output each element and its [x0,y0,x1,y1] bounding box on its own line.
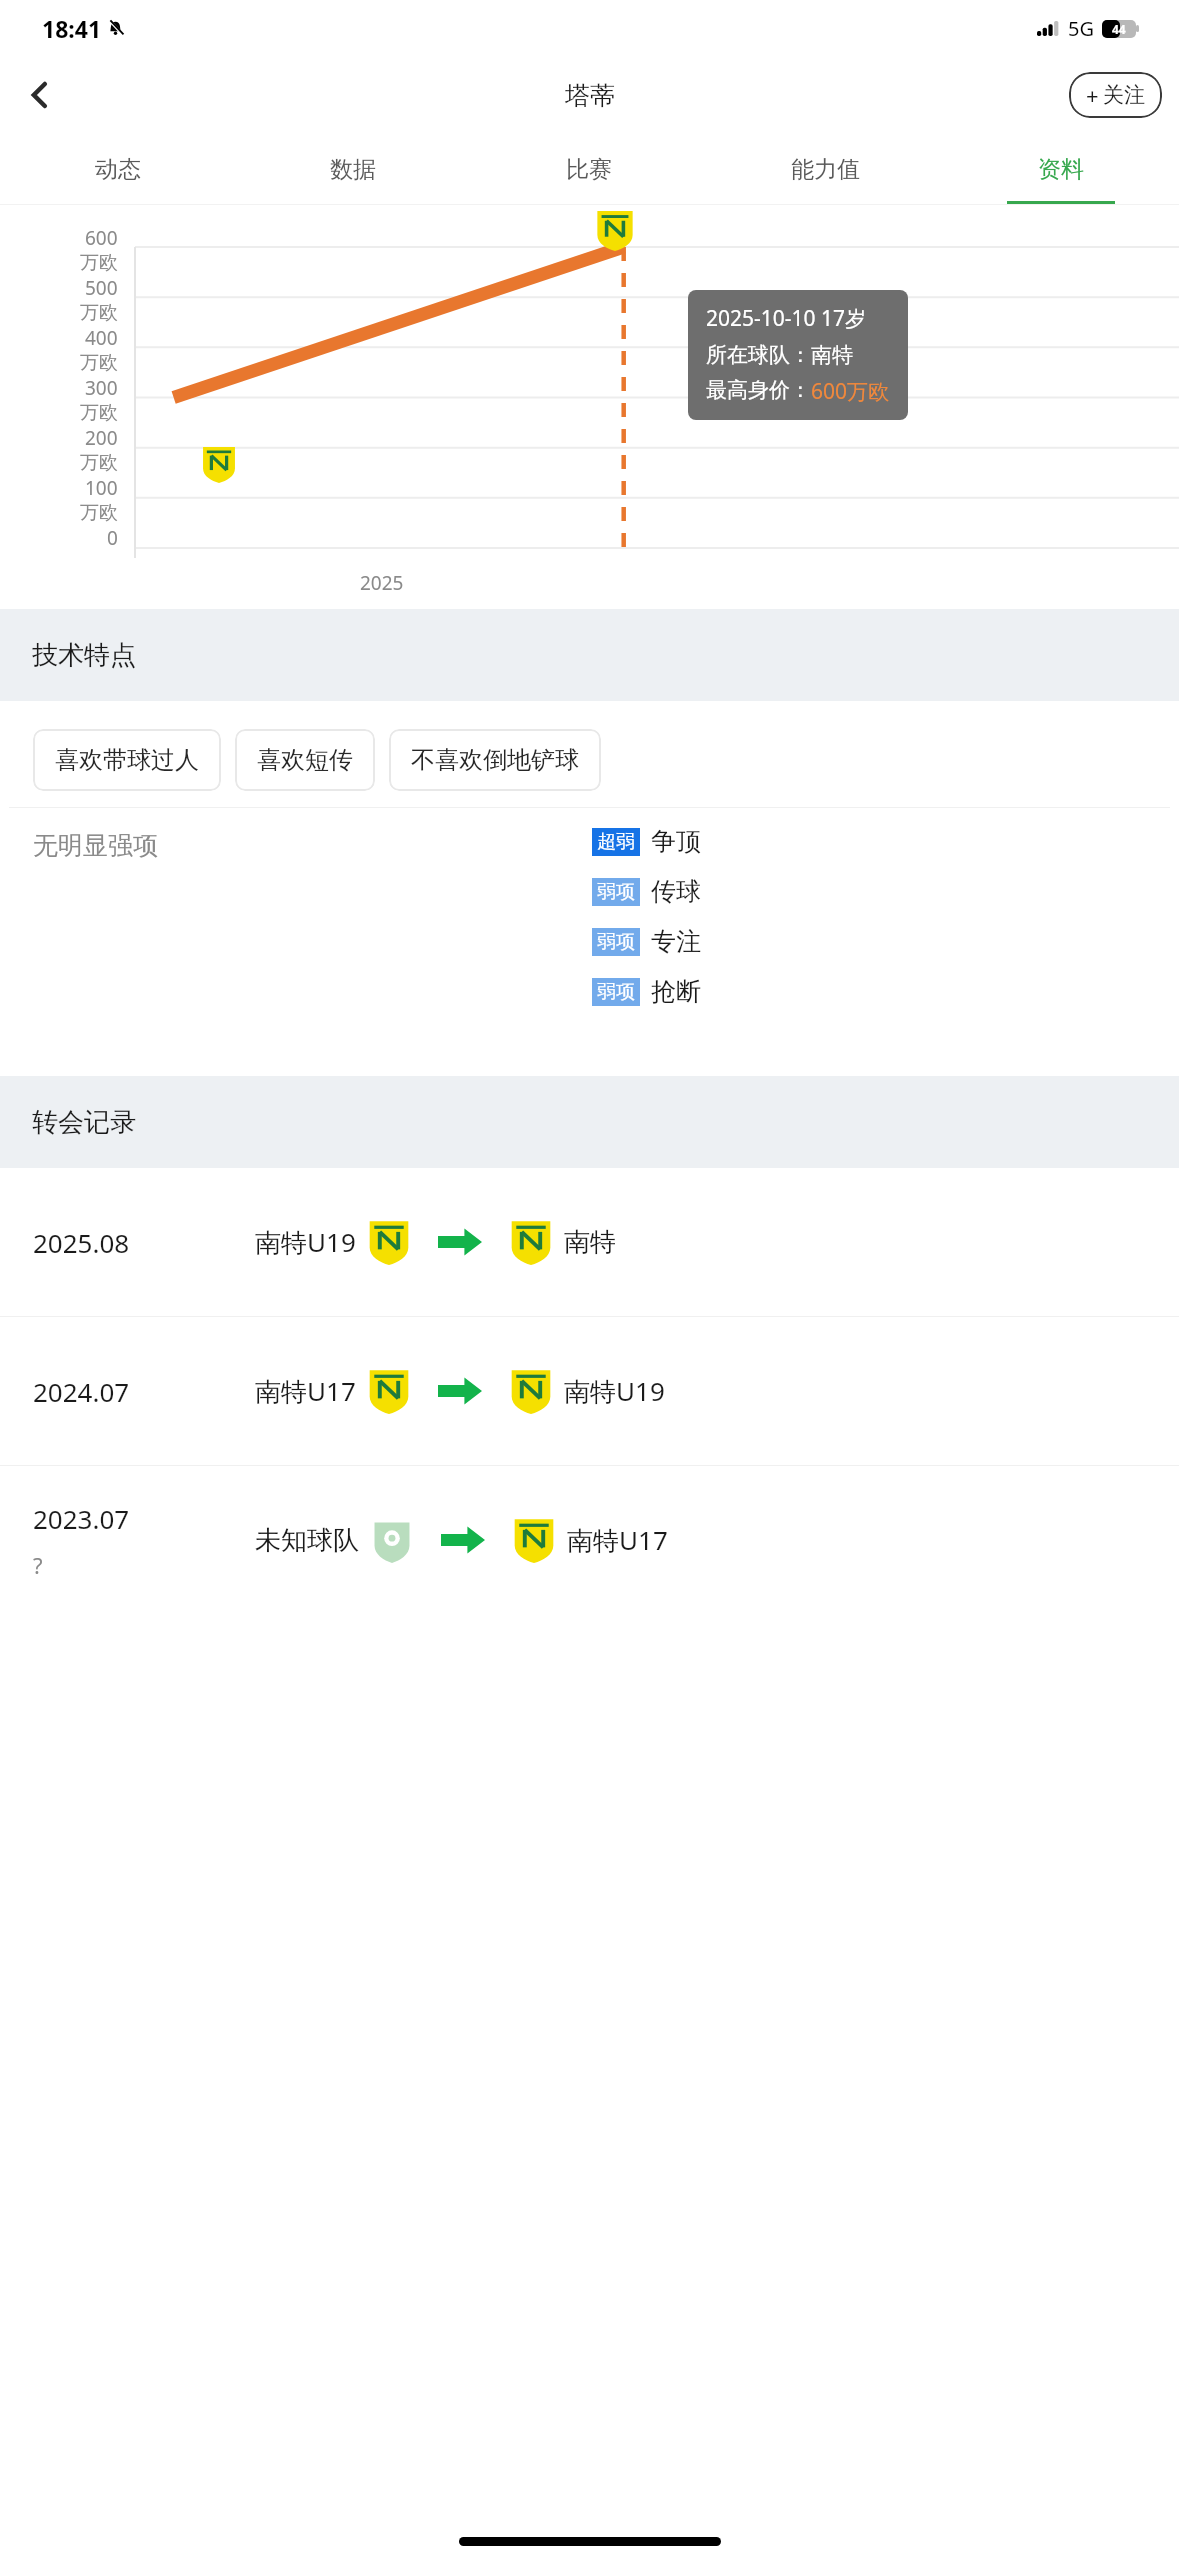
staticText: 100 [85,475,118,501]
staticText: 动态 [95,155,141,184]
staticText: 抢断 [651,976,701,1007]
staticText: 所在球队：南特 [706,342,853,368]
staticText: 喜欢带球过人 [55,745,199,775]
staticText: 5G [1068,15,1094,42]
staticText: 万欧 [80,401,118,425]
staticText: 塔蒂 [565,80,615,111]
staticText: 400 [85,325,118,351]
staticText: 弱项 [597,980,635,1004]
button[interactable]: 2025.08 [0,1168,1179,1316]
staticText: 2025.08 [33,1225,130,1260]
staticText: 比赛 [566,155,612,184]
staticText: 无明显强项 [33,830,158,861]
staticText: 转会记录 [32,1106,136,1139]
staticText: 200 [85,425,118,451]
staticText: 能力值 [791,155,860,184]
button[interactable]: 数据 [235,133,471,205]
staticText: 18:41 [42,13,102,44]
staticText: 2023.07 [33,1501,130,1536]
staticText: 资料 [1038,155,1084,184]
staticText: ? [33,1550,43,1580]
button[interactable]: + [1069,72,1162,118]
staticText: 300 [85,375,118,401]
staticText: 2024.07 [33,1374,130,1409]
button[interactable]: 动态 [0,133,235,205]
staticText: 超弱 [597,830,635,854]
staticText: 喜欢短传 [257,745,353,775]
staticText: 关注 [1103,82,1145,108]
button[interactable]: 2023.07 [0,1466,1179,1614]
button[interactable]: 喜欢短传 [235,729,375,791]
staticText: 南特 [564,1226,616,1259]
staticText: 600 [85,225,118,251]
staticText: 南特U17 [255,1373,356,1409]
staticText: 万欧 [80,451,118,475]
staticText: 传球 [651,876,701,907]
staticText: 南特U19 [255,1224,356,1260]
staticText: 2025 [360,570,404,596]
staticText: 500 [85,275,118,301]
staticText: 万欧 [80,351,118,375]
button[interactable]: 喜欢带球过人 [33,729,221,791]
staticText: 南特U17 [567,1522,668,1558]
staticText: 未知球队 [255,1524,359,1557]
staticText: 最高身价： [706,377,811,403]
button[interactable]: 资料 [943,133,1179,205]
staticText: + [1086,80,1099,110]
staticText: 弱项 [597,930,635,954]
staticText: 专注 [651,926,701,957]
button[interactable]: Back [12,67,68,123]
staticText: 万欧 [80,501,118,525]
staticText: 2025-10-10 17岁 [706,304,867,333]
staticText: 南特U19 [564,1373,665,1409]
staticText: 争顶 [651,826,701,857]
staticText: 万欧 [80,301,118,325]
staticText: 600万欧 [811,377,890,406]
staticText: 不喜欢倒地铲球 [411,745,579,775]
staticText: 弱项 [597,880,635,904]
staticText: 万欧 [80,251,118,275]
staticText: 44 [1112,21,1126,37]
button[interactable]: 不喜欢倒地铲球 [389,729,601,791]
button[interactable]: 比赛 [471,133,707,205]
staticText: 数据 [330,155,376,184]
staticText: 0 [107,525,118,551]
staticText: 技术特点 [32,639,136,672]
button[interactable]: 2024.07 [0,1317,1179,1465]
button[interactable]: 能力值 [707,133,943,205]
